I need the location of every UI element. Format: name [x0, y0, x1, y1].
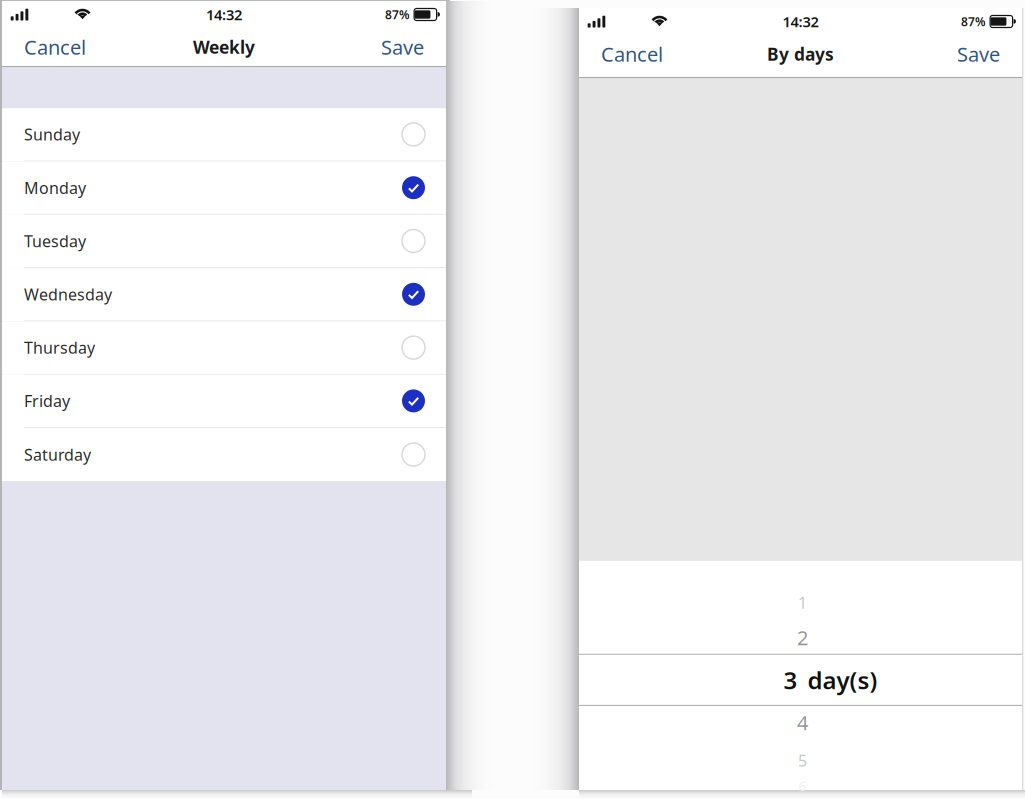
staticText: By days — [767, 42, 834, 65]
staticText: 87% — [961, 13, 986, 29]
button[interactable]: Friday — [2, 375, 446, 428]
button[interactable]: Cancel — [18, 27, 92, 67]
button[interactable]: 1 — [579, 561, 1022, 654]
staticText: Save — [381, 34, 424, 60]
staticText: 4 — [797, 709, 808, 736]
staticText: Save — [957, 41, 1000, 67]
staticText: Monday — [24, 177, 86, 198]
staticText: 87% — [385, 6, 410, 22]
button[interactable]: Cancel — [595, 34, 669, 74]
button[interactable]: Wednesday — [2, 268, 446, 321]
button[interactable]: Save — [951, 34, 1006, 74]
staticText: Thursday — [24, 337, 95, 358]
button[interactable]: Save — [375, 27, 430, 67]
staticText: Tuesday — [24, 230, 86, 252]
button[interactable]: 3 — [579, 655, 1022, 705]
button[interactable]: Monday — [2, 161, 446, 215]
staticText: 5 — [798, 750, 807, 771]
staticText: 1 — [798, 592, 807, 613]
staticText: Weekly — [193, 35, 255, 58]
button[interactable]: Saturday — [2, 428, 446, 481]
staticText: 2 — [797, 624, 808, 651]
staticText: 14:32 — [206, 5, 242, 24]
button[interactable]: Thursday — [2, 321, 446, 375]
staticText: 3 — [783, 664, 797, 696]
staticText: day(s) — [807, 664, 877, 696]
staticText: Sunday — [24, 124, 80, 145]
button[interactable]: 4 — [579, 706, 1022, 790]
staticText: Wednesday — [24, 284, 112, 305]
button[interactable]: Tuesday — [2, 215, 446, 268]
staticText: Cancel — [601, 41, 663, 67]
staticText: Saturday — [24, 444, 91, 465]
staticText: Friday — [24, 390, 70, 411]
staticText: 6 — [798, 777, 806, 795]
staticText: 14:32 — [782, 12, 818, 31]
staticText: Cancel — [24, 34, 86, 60]
button[interactable]: Sunday — [2, 108, 446, 161]
